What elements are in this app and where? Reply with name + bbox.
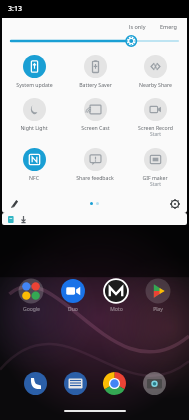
- button[interactable]: Home: [64, 410, 126, 412]
- staticText: Emerg: [160, 23, 177, 30]
- staticText: Battery Saver: [79, 81, 112, 88]
- button[interactable]: Google: [13, 278, 49, 313]
- button[interactable]: Settings: [168, 197, 181, 210]
- staticText: Nearby Share: [139, 81, 172, 88]
- button[interactable]: System update: [5, 54, 63, 89]
- button[interactable]: Chrome: [99, 368, 129, 398]
- button[interactable]: Emerg: [158, 23, 179, 30]
- button[interactable]: NFC: [5, 147, 63, 182]
- staticText: Duo: [68, 306, 78, 313]
- staticText: Screen Record: [138, 124, 173, 131]
- button[interactable]: GIF maker: [126, 147, 184, 189]
- button[interactable]: Messages: [60, 368, 90, 398]
- staticText: 3:13: [8, 4, 22, 14]
- button[interactable]: Duo: [55, 278, 91, 313]
- staticText: NFC: [29, 174, 39, 181]
- staticText: Share feedback: [76, 174, 114, 181]
- staticText: ls only: [129, 23, 146, 30]
- button[interactable]: Camera: [139, 368, 169, 398]
- button[interactable]: Battery Saver: [66, 54, 124, 89]
- button[interactable]: Brightness: [11, 34, 178, 48]
- button[interactable]: Night Light: [5, 97, 63, 132]
- button[interactable]: Screen Record: [126, 97, 184, 139]
- staticText: Start: [150, 181, 161, 188]
- button[interactable]: Edit tiles: [8, 197, 21, 210]
- button[interactable]: [2, 213, 187, 225]
- button[interactable]: Screen Cast: [66, 97, 124, 132]
- staticText: Start: [150, 131, 161, 138]
- staticText: Moto: [110, 306, 123, 313]
- staticText: System update: [16, 81, 53, 88]
- button[interactable]: Phone: [20, 368, 50, 398]
- button[interactable]: Share feedback: [66, 147, 124, 182]
- staticText: Play: [153, 306, 163, 313]
- staticText: Google: [23, 306, 40, 313]
- button[interactable]: Moto: [98, 278, 134, 313]
- button[interactable]: Play: [140, 278, 176, 313]
- staticText: GIF maker: [142, 174, 168, 181]
- staticText: Night Light: [20, 124, 48, 131]
- button[interactable]: ls only: [127, 23, 148, 30]
- button[interactable]: Nearby Share: [126, 54, 184, 89]
- staticText: Screen Cast: [81, 124, 110, 131]
